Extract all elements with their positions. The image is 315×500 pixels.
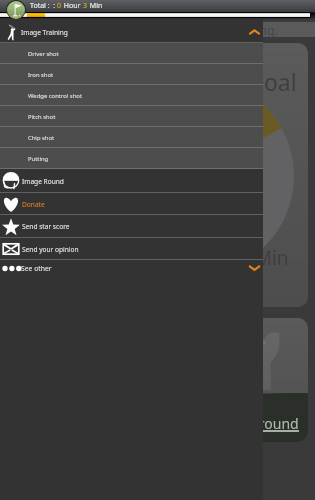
- staticText: Hour: [62, 1, 83, 11]
- staticText: Putting: [28, 155, 49, 163]
- staticText: Image Training: [21, 28, 68, 37]
- button[interactable]: Golf app icon: [6, 0, 26, 19]
- button[interactable]: Chip shot: [0, 127, 263, 148]
- button[interactable]: Putting: [0, 148, 263, 169]
- button[interactable]: See other: [0, 260, 263, 281]
- button[interactable]: Total Goal: [7, 43, 308, 307]
- staticText: Donate: [22, 200, 45, 209]
- staticText: Total : :: [30, 1, 57, 11]
- staticText: Image Round: [22, 177, 64, 186]
- button[interactable]: Driver shot: [0, 43, 263, 64]
- staticText: Wedge control shot: [28, 92, 83, 100]
- staticText: 3: [83, 1, 88, 11]
- staticText: Send star score: [22, 222, 70, 231]
- staticText: See other: [21, 264, 52, 273]
- staticText: Total Goal: [189, 66, 297, 97]
- button[interactable]: Send star score: [0, 215, 263, 238]
- staticText: Iron shot: [28, 71, 54, 79]
- button[interactable]: Donate: [0, 193, 263, 215]
- staticText: Image Training.: [186, 22, 279, 37]
- button[interactable]: Send your opinion: [0, 238, 263, 260]
- staticText: 0 Hour 0 Min: [173, 245, 289, 271]
- button[interactable]: Wedge control shot: [0, 85, 263, 106]
- button[interactable]: Image round: [7, 318, 308, 442]
- staticText: Image round: [213, 414, 299, 433]
- staticText: Send your opinion: [22, 245, 79, 254]
- staticText: 0: [57, 1, 62, 11]
- button[interactable]: Image Training: [0, 22, 263, 43]
- button[interactable]: Image Round: [0, 169, 263, 193]
- staticText: Min: [88, 1, 103, 11]
- staticText: Pitch shot: [28, 113, 56, 121]
- button[interactable]: Iron shot: [0, 64, 263, 85]
- button[interactable]: Pitch shot: [0, 106, 263, 127]
- staticText: Chip shot: [28, 134, 55, 142]
- staticText: Driver shot: [28, 50, 59, 58]
